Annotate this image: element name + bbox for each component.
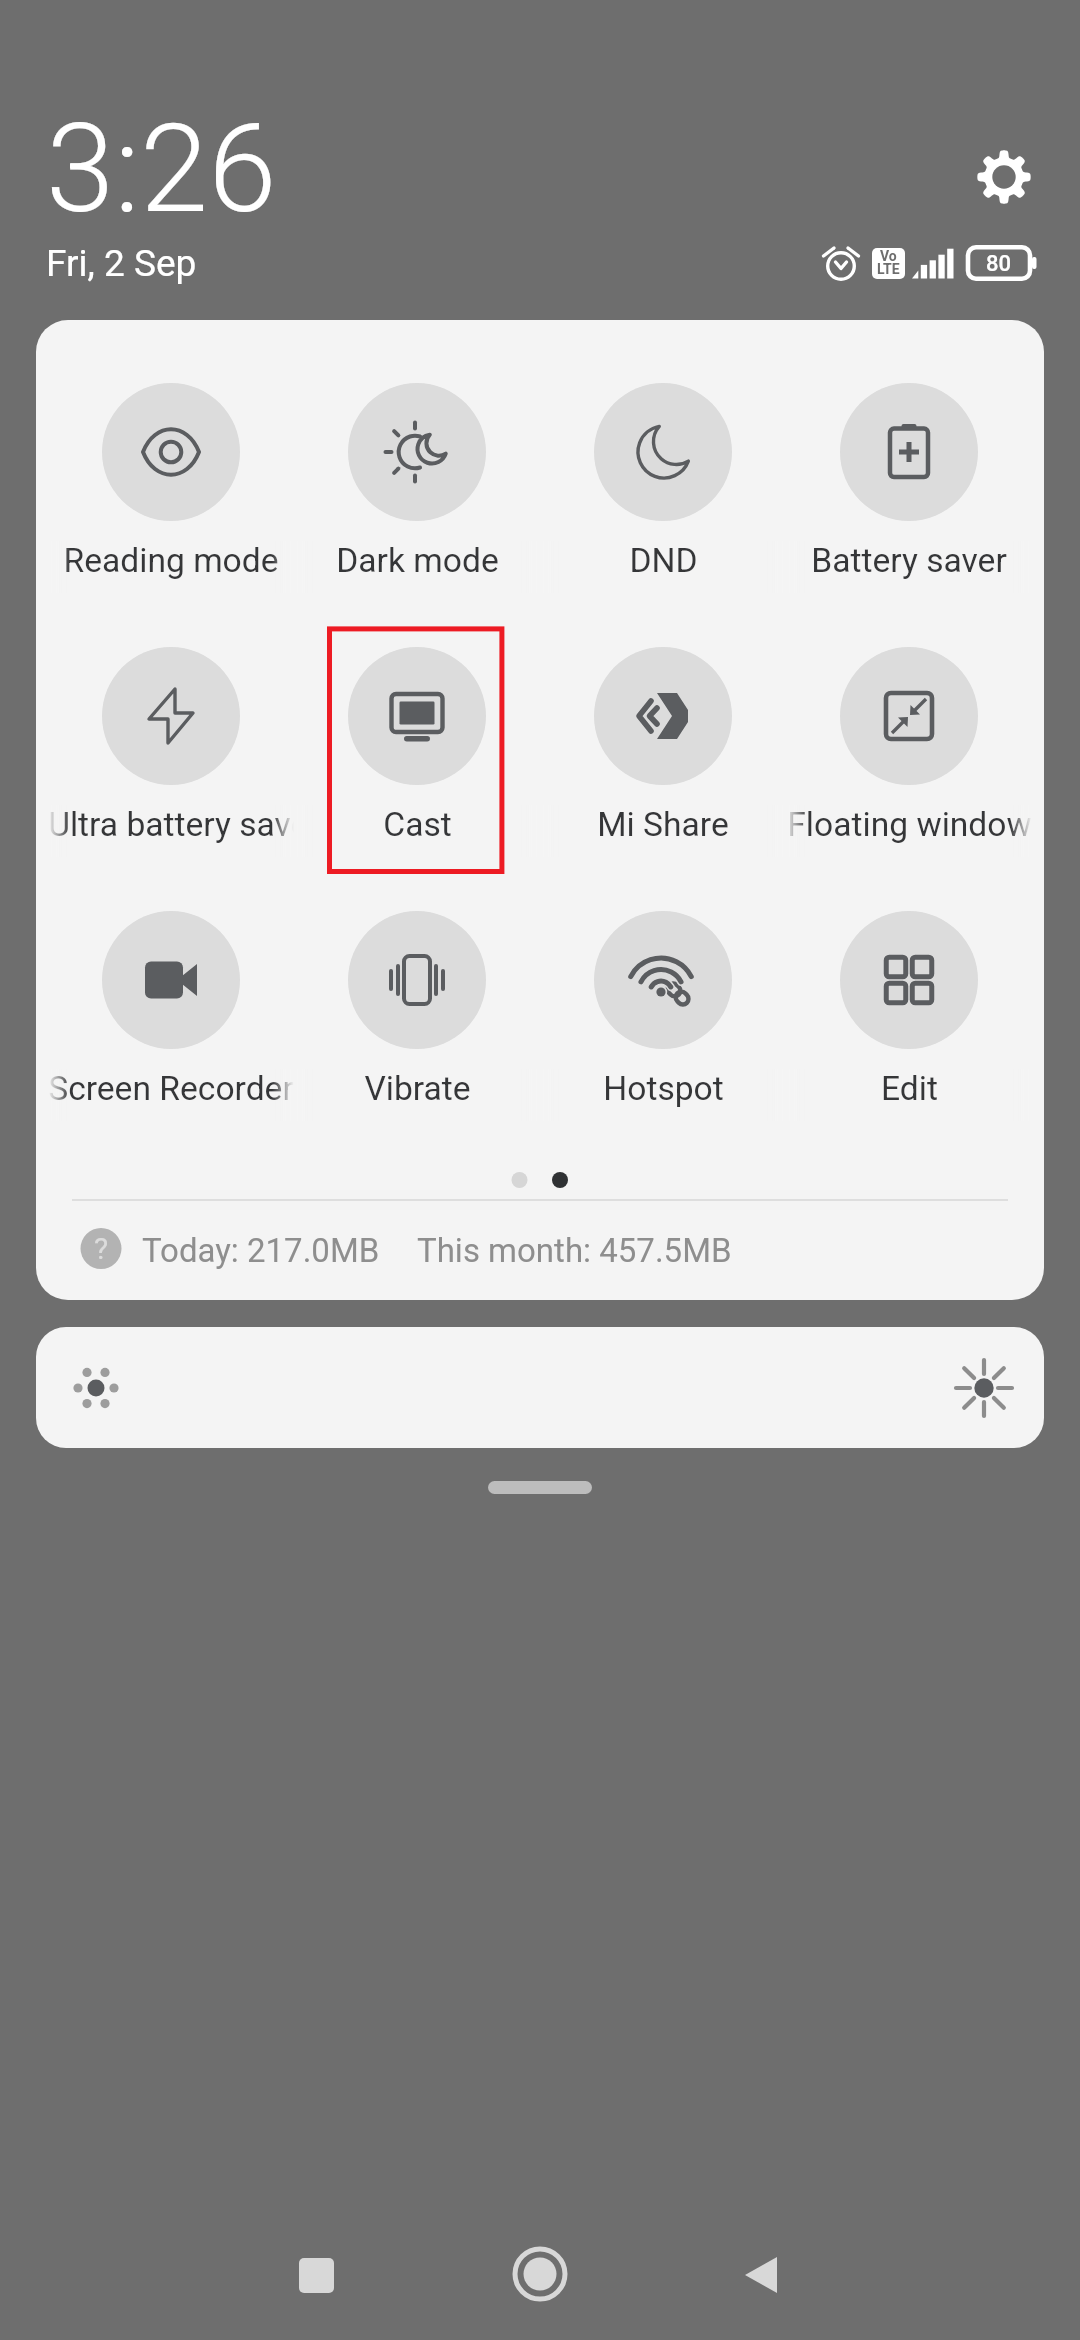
staticText: Floating window (787, 805, 1032, 844)
staticText: LTE (877, 261, 900, 277)
button[interactable]: Recents (266, 2225, 366, 2325)
staticText: Cast (383, 805, 452, 844)
staticText: DND (629, 541, 698, 580)
staticText: Vo (880, 248, 897, 264)
staticText: Edit (881, 1069, 938, 1108)
staticText: 3:26 (46, 97, 277, 241)
button[interactable] (540, 891, 786, 1109)
button[interactable] (48, 891, 294, 1109)
button[interactable]: Settings (960, 131, 1048, 219)
staticText: Screen Recorder (48, 1069, 294, 1108)
staticText: Battery saver (811, 541, 1007, 580)
button[interactable] (294, 627, 540, 845)
staticText: Hotspot (603, 1069, 724, 1108)
staticText: ? (94, 1231, 109, 1266)
button[interactable] (786, 363, 1032, 581)
staticText: Mi Share (597, 805, 729, 844)
staticText: Reading mode (63, 541, 279, 580)
button[interactable]: Home (490, 2225, 590, 2325)
button[interactable] (48, 627, 294, 845)
button[interactable]: Brightness (36, 1327, 1044, 1448)
button[interactable] (786, 891, 1032, 1109)
staticText: Dark mode (336, 541, 499, 580)
staticText: Ultra battery saver (48, 805, 294, 844)
button[interactable]: Back (711, 2225, 811, 2325)
button[interactable] (540, 363, 786, 581)
button[interactable] (786, 627, 1032, 845)
staticText: 80 (986, 251, 1012, 277)
button[interactable] (294, 891, 540, 1109)
staticText: Fri, 2 Sep (46, 242, 197, 285)
button[interactable] (48, 363, 294, 581)
button[interactable] (294, 363, 540, 581)
staticText: Vibrate (364, 1069, 471, 1108)
button[interactable] (540, 627, 786, 845)
staticText: This month: 457.5MB (417, 1231, 732, 1270)
staticText: Today: 217.0MB (142, 1231, 380, 1270)
